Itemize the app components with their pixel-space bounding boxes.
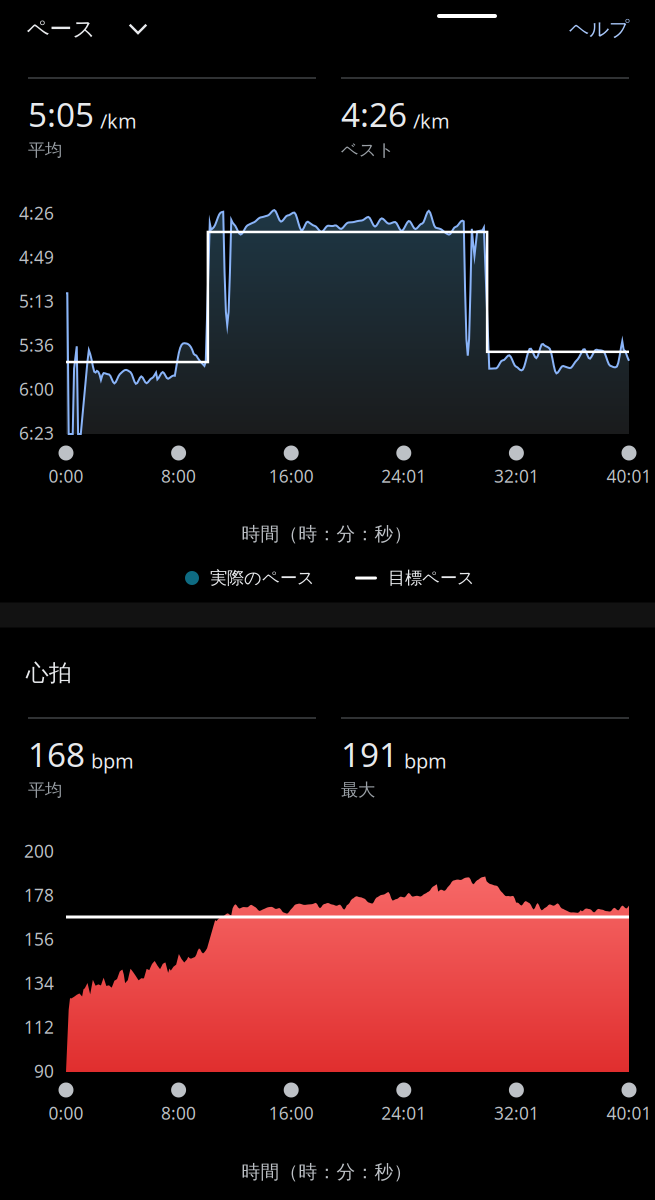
staticText: 8:00 [161, 464, 196, 487]
staticText: 心拍 [26, 659, 72, 687]
staticText: 134 [24, 971, 54, 994]
staticText: 24:01 [381, 464, 426, 487]
staticText: 178 [24, 883, 54, 906]
staticText: 4:26 [19, 201, 54, 224]
staticText: 目標ペース [388, 567, 475, 589]
staticText: 32:01 [494, 464, 539, 487]
staticText: 40:01 [606, 1101, 651, 1124]
staticText: 8:00 [161, 1101, 196, 1124]
staticText: 24:01 [381, 1101, 426, 1124]
staticText: 5:36 [19, 333, 54, 356]
staticText: ペース [26, 15, 95, 43]
staticText: 168 [28, 732, 85, 776]
staticText: /km [100, 108, 137, 134]
staticText: 112 [24, 1015, 54, 1038]
button[interactable]: ヘルプ [561, 7, 637, 51]
staticText: 200 [24, 839, 54, 862]
staticText: 時間（時：分：秒） [241, 522, 412, 545]
staticText: 5:13 [19, 289, 54, 312]
staticText: 最大 [341, 779, 375, 801]
staticText: 156 [24, 927, 54, 950]
staticText: 32:01 [494, 1101, 539, 1124]
staticText: bpm [91, 748, 134, 774]
staticText: 16:00 [269, 464, 314, 487]
staticText: 5:05 [28, 92, 94, 136]
staticText: 0:00 [48, 464, 83, 487]
staticText: 0:00 [48, 1101, 83, 1124]
staticText: 4:26 [341, 92, 407, 136]
staticText: ヘルプ [569, 17, 629, 41]
staticText: 実際のペース [210, 567, 315, 589]
staticText: 40:01 [606, 464, 651, 487]
staticText: 平均 [28, 779, 62, 801]
staticText: 時間（時：分：秒） [241, 1160, 412, 1183]
staticText: 191 [341, 732, 398, 776]
staticText: 4:49 [19, 245, 54, 268]
staticText: 平均 [28, 139, 62, 161]
staticText: ベスト [341, 139, 395, 161]
staticText: 6:23 [19, 421, 54, 444]
staticText: 6:00 [19, 377, 54, 400]
staticText: /km [413, 108, 450, 134]
staticText: 16:00 [269, 1101, 314, 1124]
staticText: 90 [34, 1059, 54, 1082]
button[interactable]: ペース [26, 5, 153, 53]
staticText: bpm [404, 748, 447, 774]
